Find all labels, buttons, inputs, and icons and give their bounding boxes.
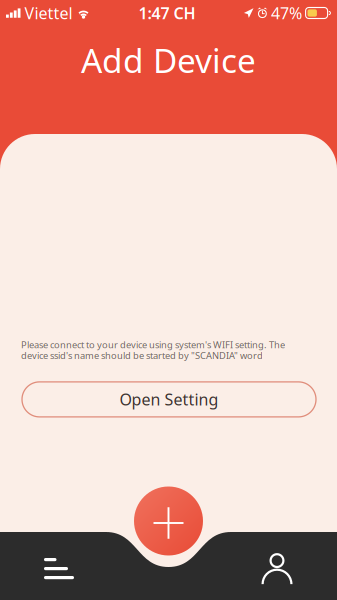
- staticText: Open Setting: [119, 389, 218, 410]
- button[interactable]: Profile: [235, 545, 319, 591]
- staticText: 1:47 CH: [138, 2, 195, 24]
- staticText: Add Device: [81, 38, 256, 82]
- staticText: device ssid's name should be started by …: [21, 349, 263, 362]
- staticText: 47%: [271, 2, 302, 24]
- button[interactable]: Devices: [17, 546, 101, 592]
- button[interactable]: Add device: [134, 486, 203, 555]
- button[interactable]: Open Setting: [22, 382, 316, 417]
- staticText: Please connect to your device using syst…: [21, 338, 285, 351]
- staticText: Viettel: [24, 2, 72, 24]
